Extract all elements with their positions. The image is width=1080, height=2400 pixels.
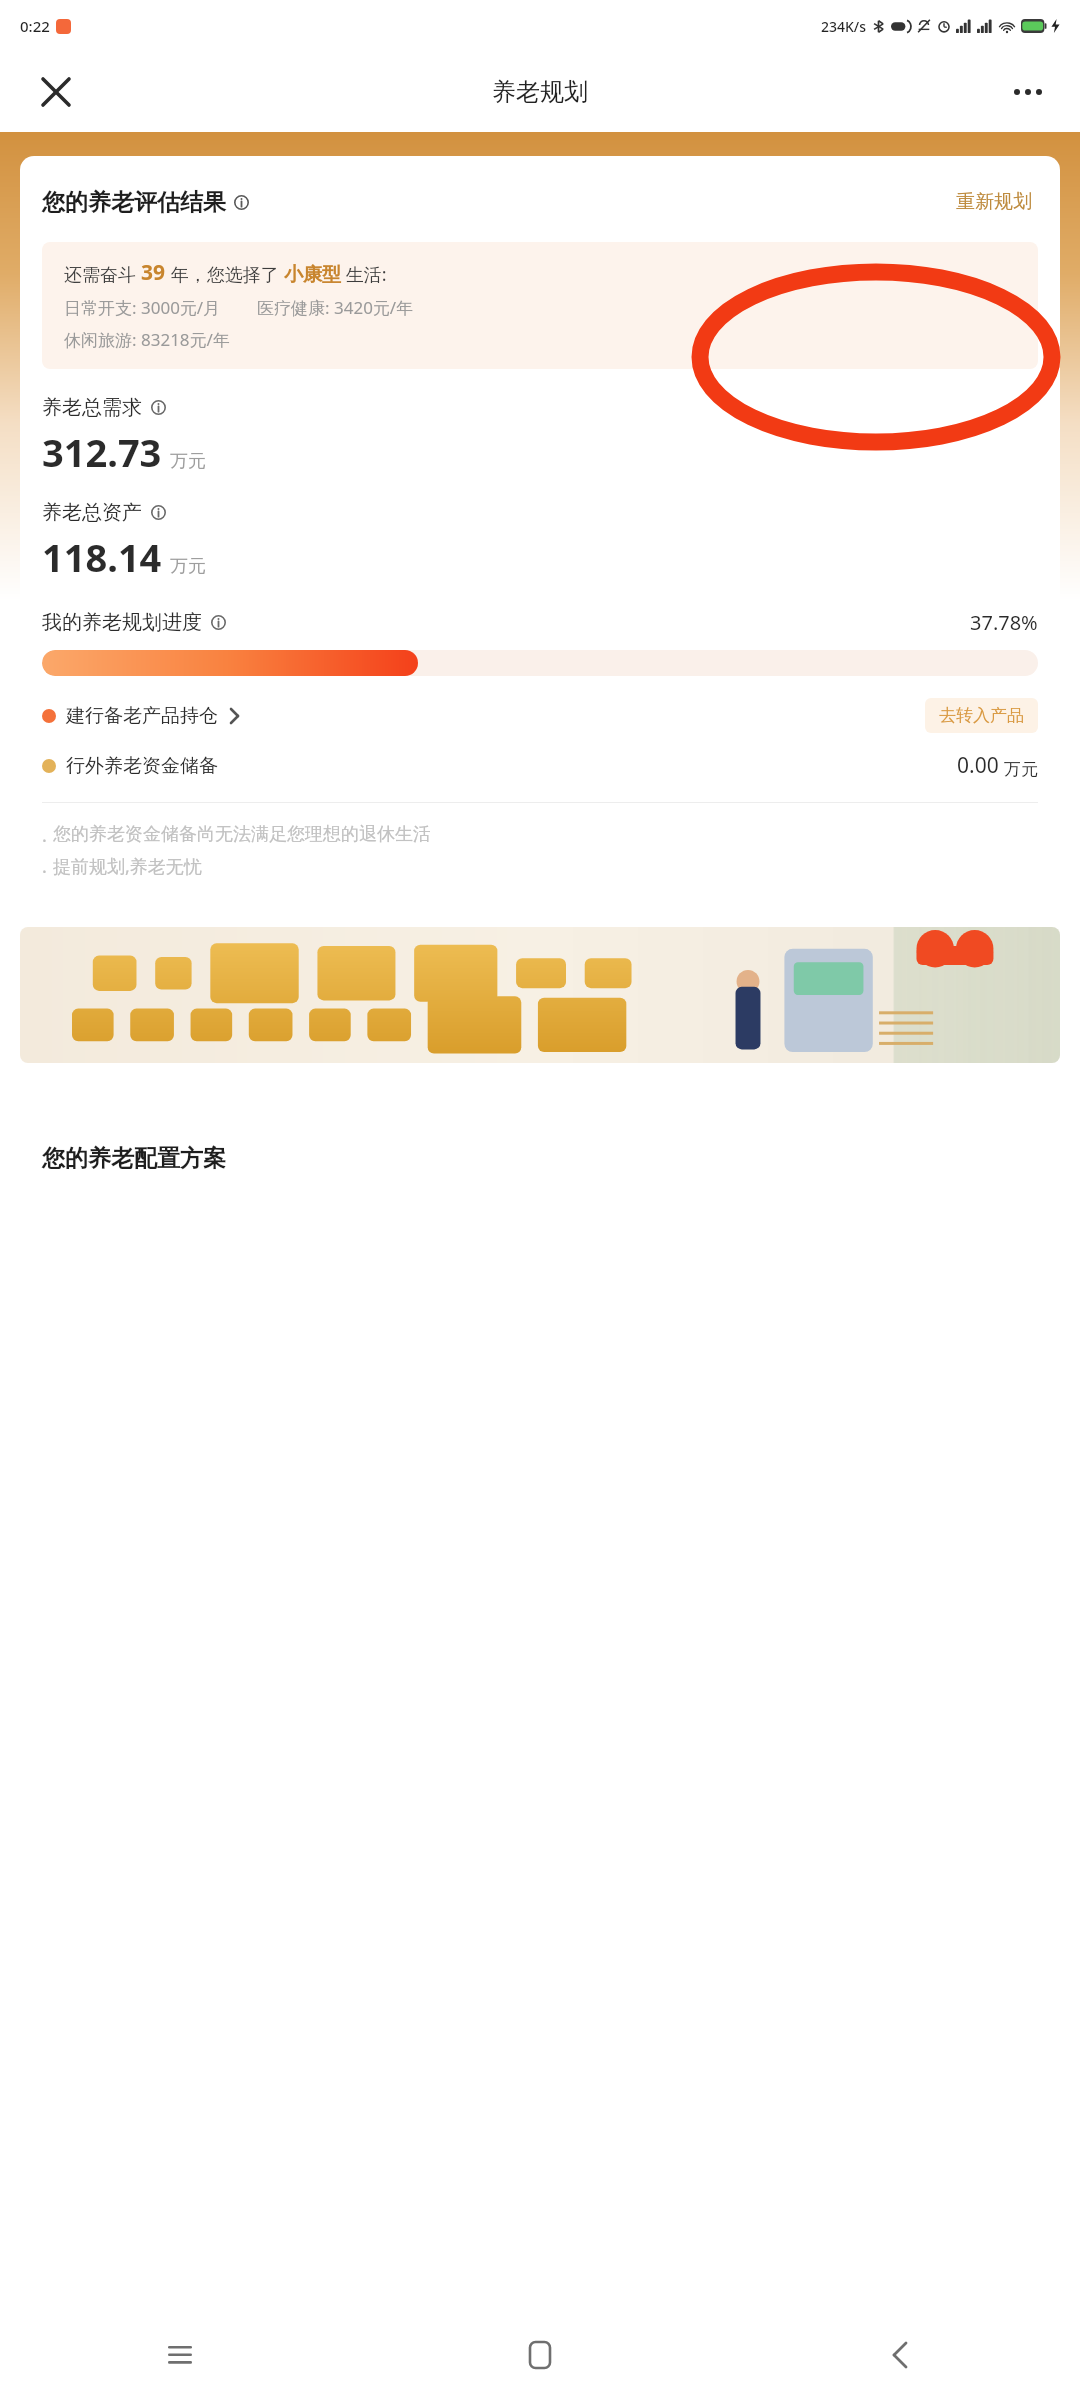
staticText: 万元 [170, 555, 206, 578]
staticText: . [42, 854, 47, 879]
staticText: 您的养老评估结果 [42, 188, 226, 217]
staticText: 118.14 [42, 531, 162, 583]
staticText: 37.78% [970, 609, 1038, 636]
staticText: . [42, 823, 47, 848]
button[interactable]: Recent apps [0, 2310, 360, 2400]
button[interactable]: 去转入产品 [925, 698, 1038, 733]
button[interactable]: 建行备老产品持仓 [42, 698, 1038, 733]
button[interactable] [20, 927, 1060, 1063]
staticText: 建行备老产品持仓 [66, 704, 218, 728]
staticText: 养老总需求 [42, 395, 142, 420]
staticText: 提前规划,养老无忧 [53, 854, 202, 879]
staticText: 您的养老资金储备尚无法满足您理想的退休生活 [53, 823, 431, 846]
button[interactable]: Close [32, 68, 80, 116]
staticText: 休闲旅游: 83218元/年 [64, 328, 230, 351]
staticText: 行外养老资金储备 [66, 754, 218, 778]
staticText: 养老规划 [492, 77, 588, 107]
staticText: 312.73 [42, 426, 162, 478]
staticText: 养老总资产 [42, 500, 142, 525]
staticText: 万元 [1004, 759, 1038, 780]
staticText: 医疗健康: 3420元/年 [257, 296, 414, 319]
staticText: 39 [141, 258, 166, 287]
staticText: 小康型 [284, 263, 341, 287]
staticText: 0.00 [957, 751, 999, 780]
staticText: 万元 [170, 450, 206, 473]
staticText: 去转入产品 [939, 705, 1024, 726]
staticText: 还需奋斗 [64, 262, 141, 287]
staticText: 日常开支: 3000元/月 [64, 296, 221, 319]
button[interactable]: More options [1004, 68, 1052, 116]
button[interactable]: Back [720, 2310, 1080, 2400]
staticText: 0:22 [20, 16, 50, 36]
staticText: 重新规划 [956, 190, 1032, 214]
staticText: 年，您选择了 [166, 262, 284, 287]
button[interactable]: 重新规划 [950, 184, 1038, 220]
button[interactable]: Home [360, 2310, 720, 2400]
staticText: 我的养老规划进度 [42, 610, 202, 635]
staticText: 234K/s [821, 17, 867, 36]
staticText: 您的养老配置方案 [42, 1144, 226, 1173]
staticText: 生活: [341, 262, 387, 287]
